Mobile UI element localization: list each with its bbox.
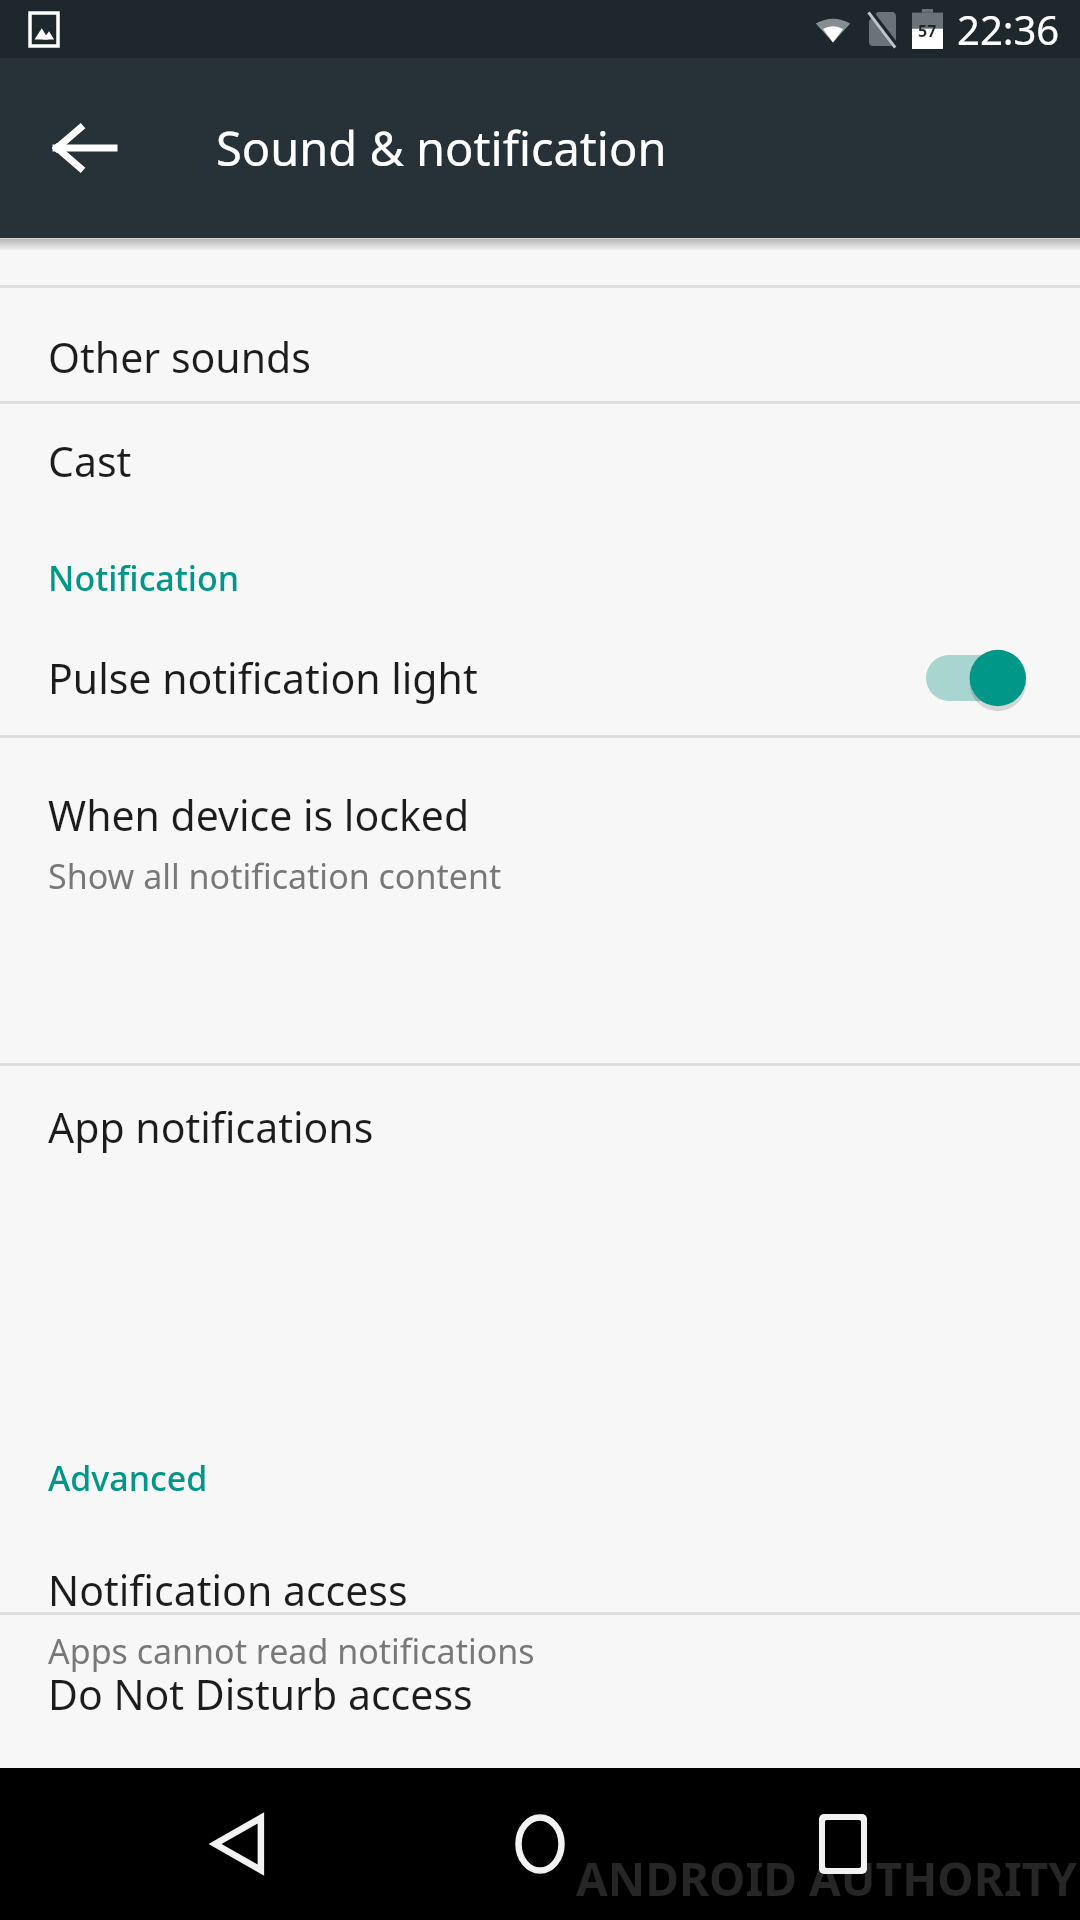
staticText: Notification access xyxy=(48,1562,408,1618)
staticText: 22:36 xyxy=(957,2,1060,56)
staticText: Notification xyxy=(48,555,240,601)
button[interactable]: Cast xyxy=(0,429,1080,493)
button[interactable]: Back xyxy=(173,1779,303,1909)
staticText: ANDROID AUTHORITY xyxy=(576,1847,1078,1910)
staticText: Pulse notification light xyxy=(48,650,920,706)
button[interactable]: Back xyxy=(24,88,144,208)
staticText: Other sounds xyxy=(48,329,311,385)
staticText: Apps cannot read notifications xyxy=(48,1628,535,1674)
button[interactable]: Do Not Disturb access xyxy=(0,1662,1080,1726)
staticText: Do Not Disturb access xyxy=(48,1666,473,1722)
button[interactable]: Notification access xyxy=(0,1558,1080,1678)
staticText: Advanced xyxy=(48,1455,208,1501)
button[interactable]: When device is locked xyxy=(0,783,1080,903)
staticText: App notifications xyxy=(48,1099,374,1155)
staticText: Sound & notification xyxy=(216,116,667,180)
button[interactable]: App notifications xyxy=(0,1095,1080,1159)
staticText: Cast xyxy=(48,433,132,489)
button[interactable]: Home xyxy=(475,1779,605,1909)
staticText: 57 xyxy=(918,20,937,42)
staticText: Show all notification content xyxy=(48,853,502,899)
button[interactable]: Recent apps xyxy=(778,1779,908,1909)
button[interactable]: Pulse notification light xyxy=(0,620,1080,735)
staticText: When device is locked xyxy=(48,787,470,843)
button[interactable]: Other sounds xyxy=(0,325,1080,389)
